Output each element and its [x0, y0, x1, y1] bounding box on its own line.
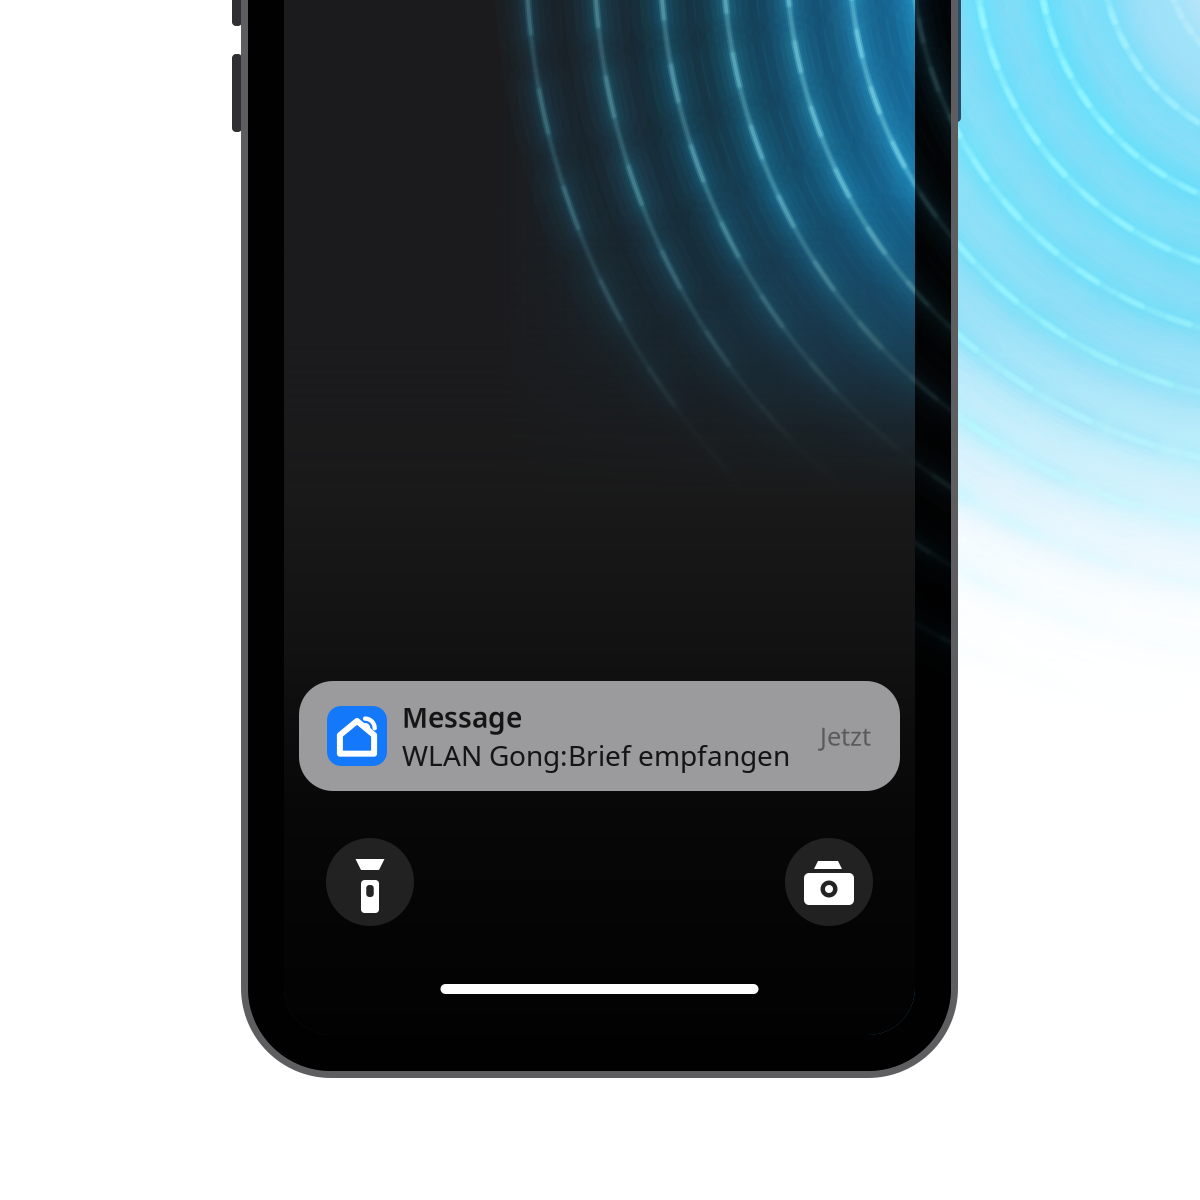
button[interactable]: Flashlight	[326, 838, 414, 926]
button[interactable]: Message	[299, 681, 900, 791]
staticText: Message	[402, 698, 522, 735]
staticText: WLAN Gong:Brief empfangen	[402, 736, 790, 774]
staticText: Jetzt	[820, 719, 871, 753]
button[interactable]: Camera	[785, 838, 873, 926]
